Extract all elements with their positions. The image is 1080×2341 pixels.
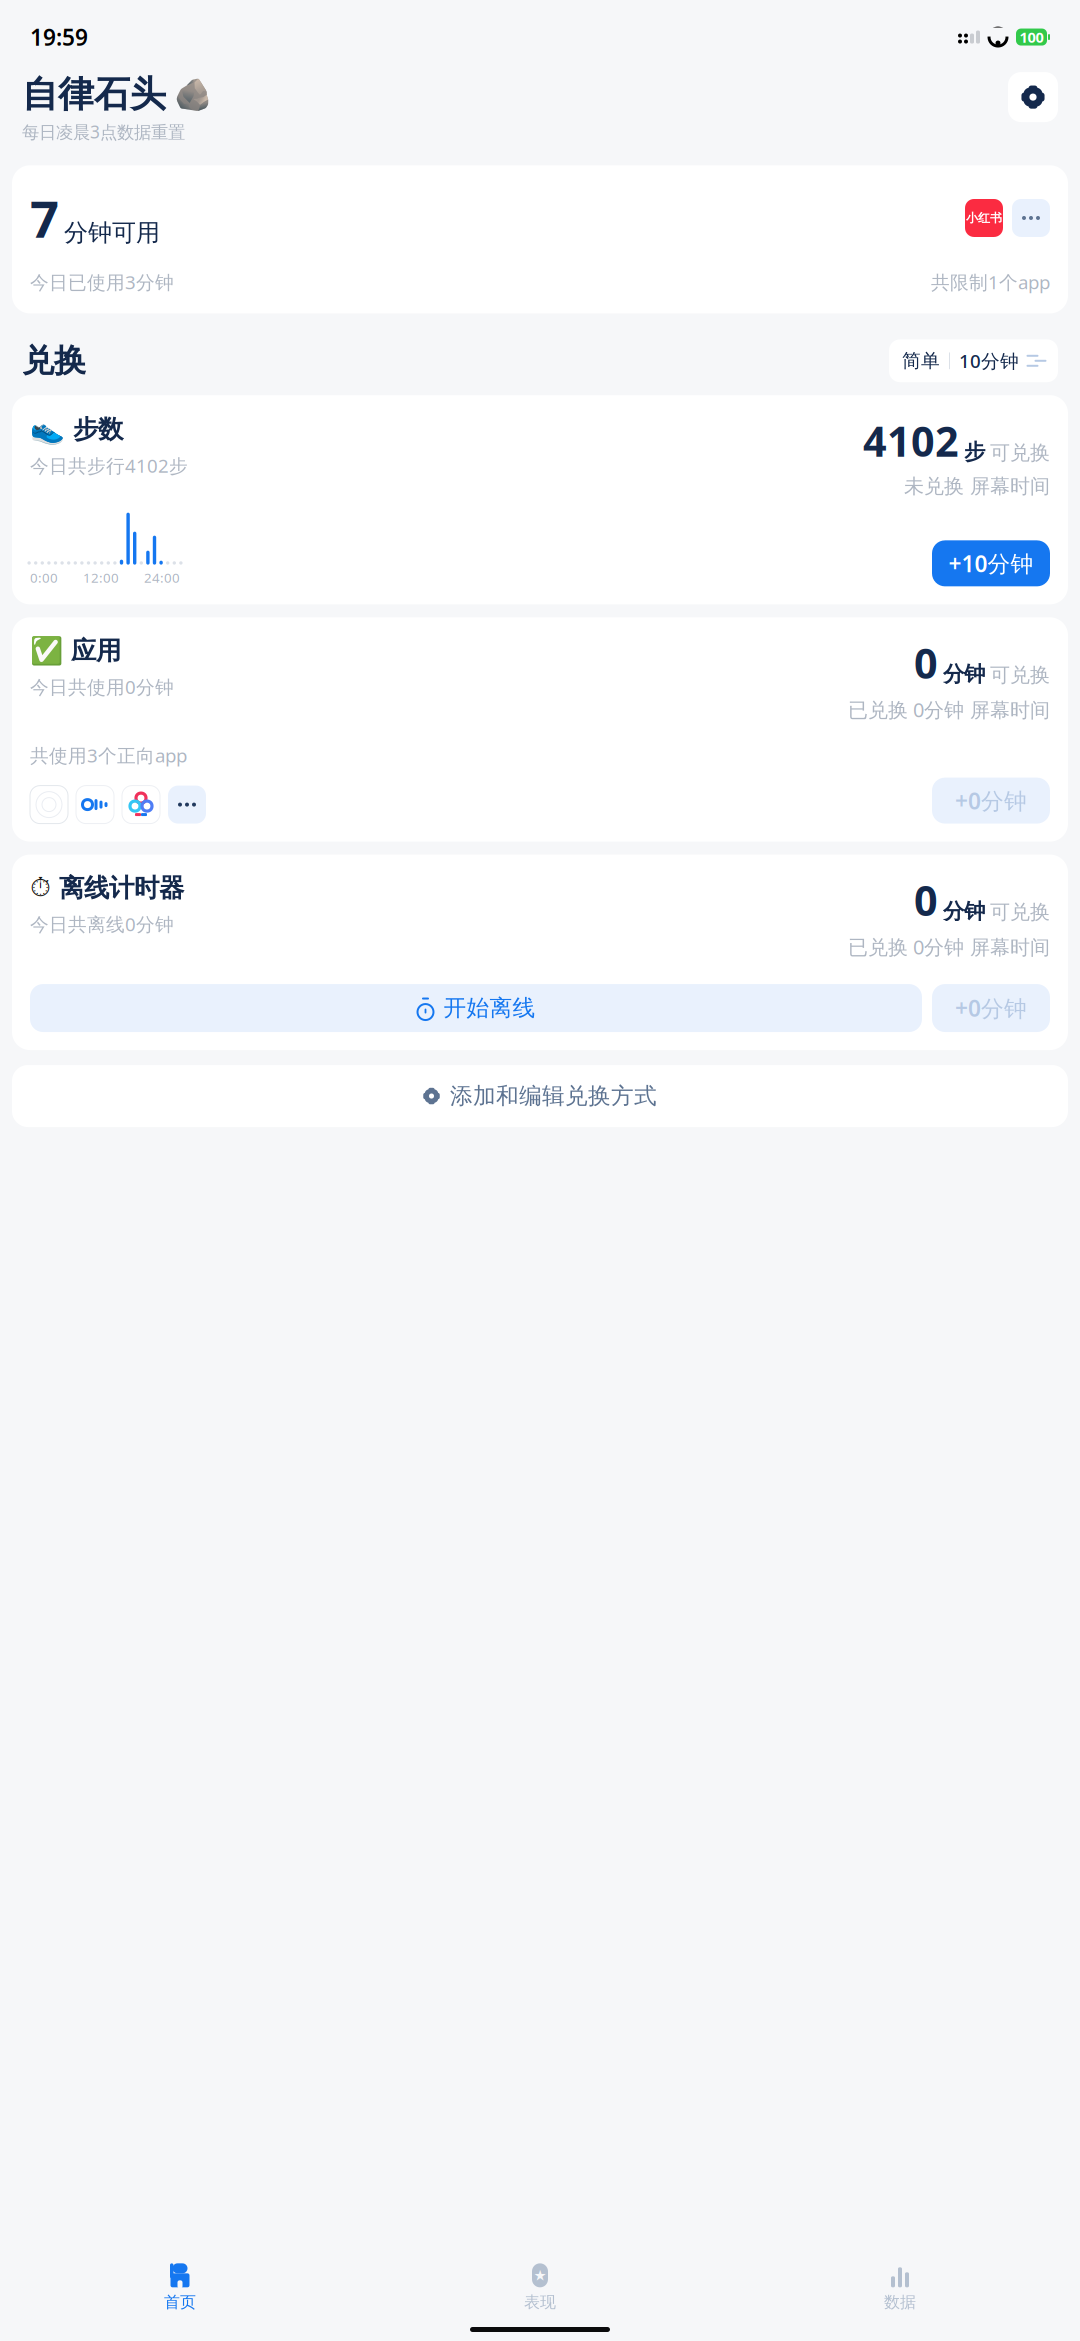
- staticText: 0: [914, 635, 938, 690]
- button[interactable]: 首页: [0, 2258, 360, 2317]
- staticText: 可兑换: [990, 900, 1050, 924]
- staticText: 0:00: [30, 569, 58, 586]
- staticText: 10分钟: [959, 348, 1019, 373]
- staticText: 开始离线: [443, 994, 535, 1022]
- staticText: 分钟: [943, 661, 985, 687]
- staticText: 24:00: [144, 569, 180, 586]
- staticText: 今日共离线0分钟: [30, 912, 174, 936]
- button[interactable]: 添加和编辑兑换方式: [12, 1065, 1068, 1127]
- button[interactable]: +10分钟: [932, 540, 1050, 586]
- staticText: ⏱: [30, 875, 51, 901]
- staticText: 🪨: [174, 77, 212, 112]
- staticText: 步: [964, 439, 985, 465]
- staticText: 19:59: [30, 22, 88, 52]
- button[interactable]: +0分钟: [932, 984, 1050, 1032]
- staticText: ✅: [30, 636, 63, 666]
- staticText: 应用: [71, 635, 121, 666]
- staticText: +0分钟: [955, 785, 1027, 816]
- staticText: 表现: [524, 2292, 556, 2312]
- staticText: 分钟可用: [64, 218, 160, 248]
- staticText: 数据: [884, 2292, 916, 2312]
- staticText: +10分钟: [948, 548, 1033, 578]
- staticText: 每日凌晨3点数据重置: [22, 120, 185, 143]
- staticText: 👟: [30, 413, 65, 445]
- staticText: 可兑换: [990, 663, 1050, 687]
- staticText: 首页: [164, 2292, 196, 2312]
- staticText: 可兑换: [990, 440, 1050, 465]
- button[interactable]: More apps: [168, 786, 206, 824]
- button[interactable]: ★: [360, 2258, 720, 2317]
- button[interactable]: 数据: [720, 2258, 1080, 2317]
- staticText: 今日已使用3分钟: [30, 270, 174, 294]
- staticText: 兑换: [22, 341, 86, 380]
- button[interactable]: 开始离线: [30, 984, 922, 1032]
- staticText: 分钟: [943, 898, 985, 924]
- staticText: 今日共步行4102步: [30, 453, 188, 478]
- staticText: 4102: [863, 413, 959, 468]
- staticText: 共使用3个正向app: [30, 743, 187, 768]
- staticText: 添加和编辑兑换方式: [450, 1082, 657, 1110]
- staticText: 共限制1个app: [931, 270, 1050, 294]
- staticText: 离线计时器: [59, 873, 184, 904]
- staticText: ★: [533, 2267, 546, 2284]
- button[interactable]: 简单: [889, 339, 1058, 382]
- staticText: 今日共使用0分钟: [30, 674, 174, 699]
- staticText: 0: [914, 873, 938, 927]
- staticText: 100: [1019, 27, 1043, 47]
- staticText: 简单: [902, 349, 940, 372]
- staticText: 已兑换 0分钟 屏幕时间: [848, 933, 1050, 960]
- staticText: +0分钟: [955, 993, 1027, 1023]
- staticText: 7: [30, 184, 59, 252]
- button[interactable]: Settings: [1008, 72, 1058, 122]
- staticText: 未兑换 屏幕时间: [904, 474, 1050, 499]
- staticText: 小红书: [966, 211, 1002, 225]
- staticText: 12:00: [83, 569, 119, 586]
- staticText: 自律石头: [22, 72, 166, 116]
- button[interactable]: More limited apps: [1012, 199, 1050, 237]
- staticText: 已兑换 0分钟 屏幕时间: [848, 696, 1050, 723]
- button[interactable]: +0分钟: [932, 778, 1050, 824]
- staticText: 步数: [73, 414, 123, 445]
